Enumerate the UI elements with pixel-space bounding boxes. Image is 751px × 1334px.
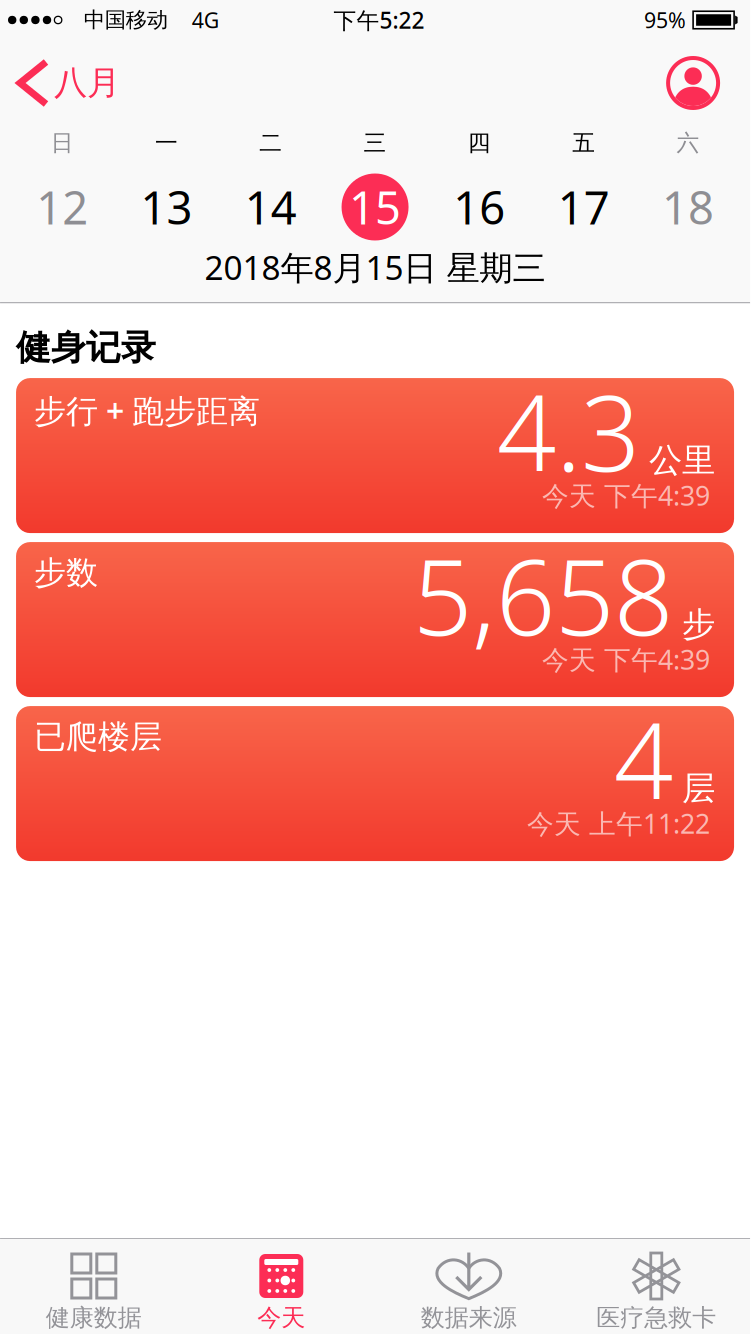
staticText: 六: [676, 129, 699, 157]
button[interactable]: 17: [531, 164, 636, 250]
staticText: 健康数据: [46, 1303, 142, 1332]
staticText: 医疗急救卡: [596, 1303, 716, 1332]
staticText: 95%: [644, 6, 686, 34]
staticText: 一: [155, 129, 178, 157]
button[interactable]: 14: [219, 164, 323, 250]
staticText: 步行 + 跑步距离: [34, 389, 260, 432]
staticText: 四: [468, 129, 491, 157]
button[interactable]: 13: [114, 164, 219, 250]
staticText: 三: [363, 129, 386, 157]
staticText: 12: [36, 177, 88, 237]
button[interactable]: 15: [323, 164, 427, 250]
staticText: 步: [682, 604, 715, 645]
staticText: 步数: [34, 553, 98, 592]
button[interactable]: 12: [10, 164, 114, 250]
button[interactable]: 今天: [187, 1239, 375, 1334]
button[interactable]: 健康数据: [0, 1239, 187, 1334]
staticText: 八月: [54, 62, 120, 103]
staticText: 二: [259, 129, 282, 157]
staticText: 13: [140, 177, 192, 237]
button[interactable]: 返回 八月: [20, 62, 120, 104]
button[interactable]: 18: [636, 164, 740, 250]
button[interactable]: 步行 + 跑步距离: [16, 378, 734, 533]
staticText: 中国移动: [84, 7, 168, 33]
staticText: 4G: [192, 6, 220, 34]
staticText: 今天 下午4:39: [542, 642, 710, 677]
button[interactable]: 16: [427, 164, 531, 250]
staticText: 下午5:22: [333, 5, 424, 35]
staticText: 公里: [649, 440, 715, 481]
button[interactable]: 已爬楼层: [16, 706, 734, 861]
staticText: 4.3: [497, 362, 640, 500]
button[interactable]: 个人资料: [668, 58, 718, 108]
button[interactable]: 数据来源: [375, 1239, 562, 1334]
staticText: 14: [245, 177, 297, 237]
staticText: 5,658: [413, 526, 673, 664]
staticText: 数据来源: [421, 1303, 517, 1332]
staticText: 今天: [257, 1303, 305, 1332]
staticText: 五: [572, 129, 595, 157]
staticText: 今天 下午4:39: [542, 478, 710, 513]
button[interactable]: 步数: [16, 542, 734, 697]
staticText: 17: [558, 177, 610, 237]
staticText: 层: [682, 768, 715, 809]
staticText: 日: [51, 129, 74, 157]
staticText: 今天 上午11:22: [527, 806, 710, 841]
staticText: 健身记录: [16, 326, 156, 369]
staticText: 15: [349, 177, 401, 237]
staticText: 18: [662, 177, 714, 237]
staticText: 16: [453, 177, 505, 237]
staticText: 2018年8月15日 星期三: [204, 245, 545, 289]
staticText: 4: [614, 690, 673, 828]
button[interactable]: 医疗急救卡: [562, 1239, 750, 1334]
staticText: 已爬楼层: [34, 717, 162, 756]
